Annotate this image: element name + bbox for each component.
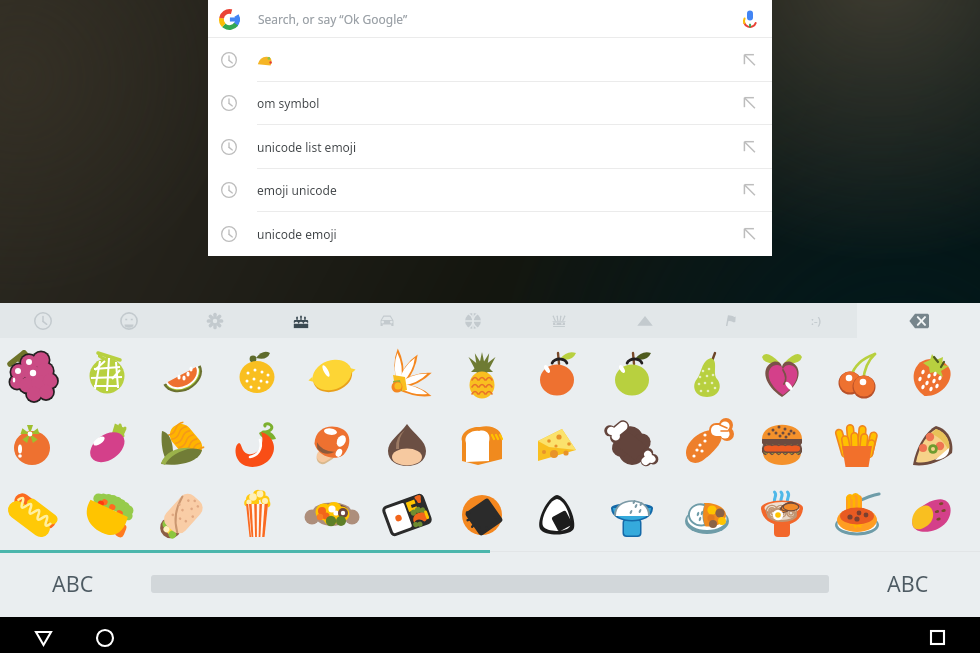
- staticText: Search, or say “Ok Google”: [258, 11, 408, 27]
- button[interactable]: Food: [258, 303, 344, 338]
- button[interactable]: Transport: [344, 303, 430, 338]
- button[interactable]: Search, or say “Ok Google”: [208, 0, 772, 38]
- button[interactable]: Insert suggestion: [733, 86, 767, 120]
- button[interactable]: Smileys: [86, 303, 172, 338]
- button[interactable]: ABC: [0, 553, 145, 614]
- staticText: unicode list emoji: [257, 139, 357, 155]
- staticText: unicode emoji: [257, 226, 337, 242]
- button[interactable]: Activity: [430, 303, 516, 338]
- staticText: ABC: [52, 569, 94, 598]
- button[interactable]: Insert suggestion: [733, 43, 767, 77]
- button[interactable]: Insert suggestion: [733, 217, 767, 251]
- staticText: emoji unicode: [257, 182, 337, 198]
- button[interactable]: emoji unicode: [208, 168, 772, 212]
- button[interactable]: unicode emoji: [208, 212, 772, 256]
- staticText: om symbol: [257, 95, 320, 111]
- button[interactable]: unicode list emoji: [208, 125, 772, 169]
- button[interactable]: Backspace: [857, 303, 980, 338]
- button[interactable]: Insert suggestion: [208, 38, 772, 82]
- button[interactable]: ABC: [835, 553, 980, 614]
- button[interactable]: Objects: [516, 303, 602, 338]
- staticText: :-): [811, 313, 821, 328]
- button[interactable]: Recents: [917, 619, 957, 653]
- button[interactable]: Home: [85, 620, 125, 653]
- button[interactable]: Insert suggestion: [733, 173, 767, 207]
- button[interactable]: Flags: [688, 303, 774, 338]
- staticText: ABC: [887, 569, 929, 598]
- button[interactable]: Nature: [172, 303, 258, 338]
- button[interactable]: Back: [23, 620, 63, 653]
- button[interactable]: Insert suggestion: [733, 130, 767, 164]
- button[interactable]: Recent: [0, 303, 86, 338]
- button[interactable]: om symbol: [208, 81, 772, 125]
- button[interactable]: Voice search: [733, 2, 767, 36]
- button[interactable]: Symbols: [602, 303, 688, 338]
